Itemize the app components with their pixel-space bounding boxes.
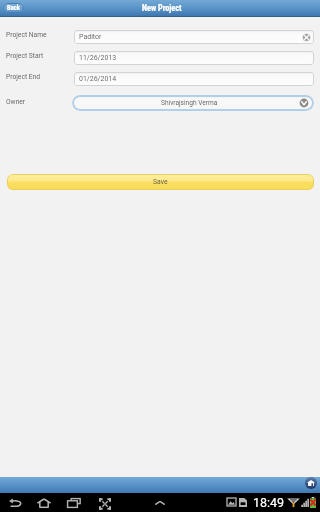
button[interactable]: Show notifications — [153, 498, 167, 508]
staticText: Shivrajsingh Verma — [161, 99, 218, 107]
staticText: 18:49 — [253, 495, 285, 510]
staticText: New Project — [142, 3, 182, 13]
button[interactable]: Home — [37, 498, 51, 508]
button[interactable]: 01/26/2014 — [74, 72, 314, 86]
button[interactable]: Open owner list — [299, 98, 309, 108]
button[interactable]: Home launcher — [305, 477, 317, 489]
staticText: 11/26/2013 — [79, 54, 117, 62]
button[interactable]: Save — [7, 174, 314, 190]
staticText: Owner — [6, 98, 26, 106]
staticText: Project Start — [6, 52, 44, 60]
button[interactable]: Recent apps — [67, 498, 81, 508]
button[interactable]: Back — [9, 498, 22, 508]
button[interactable]: Back — [3, 3, 24, 13]
button[interactable]: Paditor — [74, 30, 314, 44]
staticText: 01/26/2014 — [79, 75, 117, 83]
staticText: Paditor — [79, 33, 102, 41]
staticText: Back — [7, 4, 20, 12]
staticText: Save — [153, 178, 168, 186]
staticText: Project Name — [6, 31, 47, 39]
button[interactable]: 11/26/2013 — [74, 51, 314, 65]
button[interactable]: Shivrajsingh Verma — [72, 95, 314, 111]
button[interactable]: Screenshot — [99, 498, 111, 510]
staticText: Project End — [6, 73, 40, 81]
button[interactable]: Clear text — [302, 33, 311, 42]
